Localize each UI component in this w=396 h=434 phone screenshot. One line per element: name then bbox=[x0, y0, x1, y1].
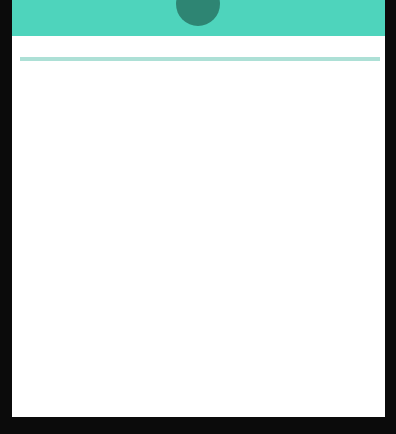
button[interactable]: Profile bbox=[176, 0, 220, 36]
button[interactable]: Profile bbox=[12, 0, 385, 36]
